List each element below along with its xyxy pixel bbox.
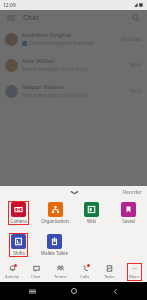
staticText: Alex Wilber xyxy=(22,57,56,65)
button[interactable]: Collapse xyxy=(65,187,83,198)
button[interactable]: Home xyxy=(64,282,84,300)
staticText: Camera xyxy=(10,218,27,224)
button[interactable]: Menu xyxy=(5,12,17,24)
button[interactable]: Alex Wilber xyxy=(0,52,147,78)
button[interactable]: Activity xyxy=(3,263,22,281)
button[interactable]: Wiki xyxy=(82,201,101,225)
button[interactable]: Tasks xyxy=(102,263,117,281)
button[interactable]: Search xyxy=(130,12,142,24)
staticText: Megan Bowen xyxy=(22,83,64,91)
button[interactable]: Kathlene Singhal xyxy=(0,26,147,52)
button[interactable]: Recents xyxy=(22,282,42,300)
staticText: Reorder xyxy=(123,189,142,196)
staticText: Activity xyxy=(5,274,20,280)
button[interactable]: Shifts xyxy=(9,233,28,257)
staticText: Sent a message to the team xyxy=(29,40,95,47)
staticText: Shifts xyxy=(13,250,25,256)
button[interactable]: Walkie Talkie xyxy=(39,233,70,257)
button[interactable]: Calls xyxy=(78,263,92,281)
button[interactable]: Back xyxy=(105,282,125,300)
staticText: 12:09 xyxy=(3,2,16,9)
button[interactable]: Chat xyxy=(29,263,43,281)
staticText: Calls xyxy=(80,274,90,280)
staticText: 08:12 xyxy=(130,88,142,94)
staticText: Saved xyxy=(122,218,135,224)
button[interactable]: More xyxy=(127,263,142,281)
button[interactable]: Saved xyxy=(119,201,138,225)
staticText: Yesterday xyxy=(121,36,142,42)
button[interactable] xyxy=(0,10,147,196)
button[interactable]: Reorder xyxy=(118,189,147,196)
staticText: More xyxy=(129,274,140,280)
staticText: Kathlene Singhal xyxy=(22,31,72,39)
button[interactable]: Megan Bowen xyxy=(0,78,147,104)
button[interactable]: Camera xyxy=(8,201,29,225)
staticText: Tasks xyxy=(104,274,115,280)
staticText: Organisation xyxy=(41,218,69,224)
staticText: Walkie Talkie xyxy=(41,250,68,256)
staticText: Teams xyxy=(54,274,67,280)
staticText: Wiki xyxy=(87,218,96,224)
staticText: Chat xyxy=(23,13,39,23)
staticText: Sent a message to the team xyxy=(22,92,88,99)
staticText: Sent a message to the team xyxy=(22,66,88,73)
button[interactable]: Organisation xyxy=(39,201,71,225)
button[interactable]: Teams xyxy=(52,263,69,281)
staticText: 08:45 xyxy=(130,62,142,68)
staticText: Chat xyxy=(31,274,41,280)
